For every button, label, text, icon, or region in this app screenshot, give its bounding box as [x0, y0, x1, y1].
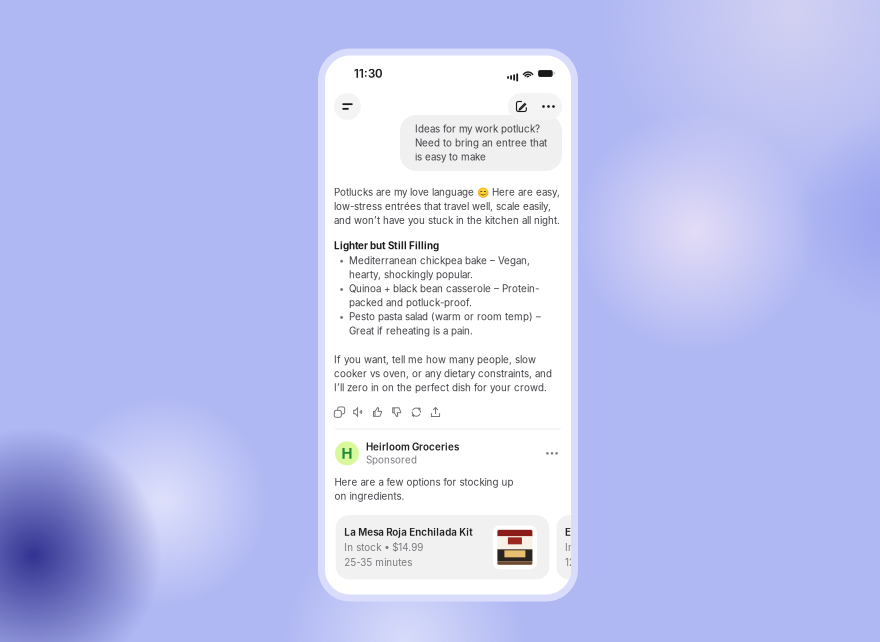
staticText: low-stress entrées that travel well, sca…	[334, 200, 551, 212]
button[interactable]: Copy	[333, 406, 345, 418]
staticText: cooker vs oven, or any dietary constrain…	[334, 368, 552, 380]
staticText: on ingredients.	[334, 490, 404, 502]
button[interactable]: More options	[535, 93, 562, 120]
staticText: Heirloom Groceries	[366, 441, 459, 453]
staticText: If you want, tell me how many people, sl…	[334, 354, 536, 366]
staticText: is easy to make	[415, 151, 486, 163]
staticText: Ideas for my work potluck?	[415, 123, 540, 135]
staticText: Potlucks are my love language 😊 Here are…	[334, 186, 560, 198]
staticText: Pesto pasta salad (warm or room temp) –	[349, 311, 541, 323]
staticText: Quinoa + black bean casserole – Protein-	[349, 283, 539, 295]
button[interactable]: Good response	[372, 406, 384, 418]
staticText: 11:30	[354, 67, 383, 80]
staticText: I’ll zero in on the perfect dish for you…	[334, 382, 547, 394]
staticText: •	[339, 283, 344, 294]
button[interactable]: La Mesa Roja Enchilada Kit	[336, 515, 549, 579]
staticText: hearty, shockingly popular.	[349, 269, 473, 281]
button[interactable]: Share	[429, 406, 441, 418]
staticText: Here are a few options for stocking up	[334, 476, 513, 488]
button[interactable]: Enchilada Sauce	[556, 515, 770, 579]
button[interactable]: New chat	[508, 93, 535, 120]
staticText: packed and potluck-proof.	[349, 297, 472, 309]
staticText: •	[339, 311, 344, 322]
button[interactable]: Ad options	[541, 444, 563, 462]
staticText: 25-35 minutes	[344, 556, 412, 568]
button[interactable]: Bad response	[391, 406, 403, 418]
staticText: Need to bring an entree that	[415, 137, 547, 149]
staticText: In stock • $14.99	[344, 541, 423, 553]
staticText: •	[339, 255, 344, 266]
button[interactable]: Read aloud	[353, 406, 365, 418]
staticText: Great if reheating is a pain.	[349, 325, 473, 337]
staticText: Enchilada Sauce	[565, 526, 645, 538]
staticText: La Mesa Roja Enchilada Kit	[344, 526, 472, 538]
button[interactable]: Sidebar	[334, 93, 361, 120]
button[interactable]: Regenerate	[410, 406, 422, 418]
staticText: Sponsored	[366, 454, 417, 466]
staticText: Mediterranean chickpea bake – Vegan,	[349, 255, 530, 267]
staticText: Lighter but Still Filling	[334, 240, 439, 252]
staticText: and won’t have you stuck in the kitchen …	[334, 214, 560, 226]
staticText: H	[341, 444, 352, 462]
staticText: In stock • $4.50	[565, 541, 640, 553]
staticText: 12-20 minutes	[565, 556, 631, 568]
